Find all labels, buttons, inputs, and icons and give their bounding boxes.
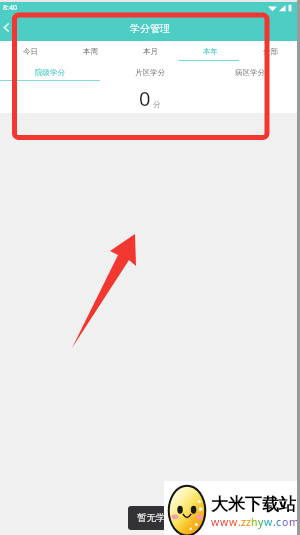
staticText: z: [241, 515, 246, 529]
button[interactable]: 本月: [120, 41, 180, 61]
staticText: 今日: [23, 47, 38, 56]
staticText: 病区学分: [235, 68, 265, 77]
staticText: 全部: [263, 47, 278, 56]
staticText: 片区学分: [135, 68, 165, 77]
button[interactable]: 病区学分: [200, 61, 300, 81]
staticText: w: [264, 515, 273, 529]
staticText: 本周: [83, 47, 98, 56]
staticText: 0: [139, 85, 151, 112]
staticText: y: [258, 515, 264, 529]
staticText: 学分管理: [130, 22, 170, 35]
staticText: w: [220, 515, 229, 529]
button[interactable]: 院级学分: [0, 61, 100, 81]
button[interactable]: 片区学分: [100, 61, 200, 81]
staticText: 分: [153, 100, 161, 109]
staticText: .: [238, 515, 241, 529]
button[interactable]: Back: [0, 14, 16, 41]
staticText: w: [229, 515, 238, 529]
staticText: 院级学分: [35, 68, 65, 77]
staticText: 大米下载站: [211, 494, 296, 515]
staticText: c: [276, 515, 282, 529]
staticText: m: [289, 515, 299, 529]
staticText: 本月: [143, 47, 158, 56]
staticText: .: [273, 515, 276, 529]
staticText: o: [282, 515, 289, 529]
staticText: 8:40: [3, 3, 17, 13]
staticText: 本年: [203, 47, 218, 56]
button[interactable]: 本年: [180, 41, 240, 61]
button[interactable]: 本周: [60, 41, 120, 61]
button[interactable]: 全部: [240, 41, 300, 61]
staticText: w: [211, 515, 220, 529]
button[interactable]: 今日: [0, 41, 60, 61]
staticText: h: [251, 515, 258, 529]
staticText: 暂无学分: [137, 512, 175, 524]
staticText: z: [246, 515, 251, 529]
